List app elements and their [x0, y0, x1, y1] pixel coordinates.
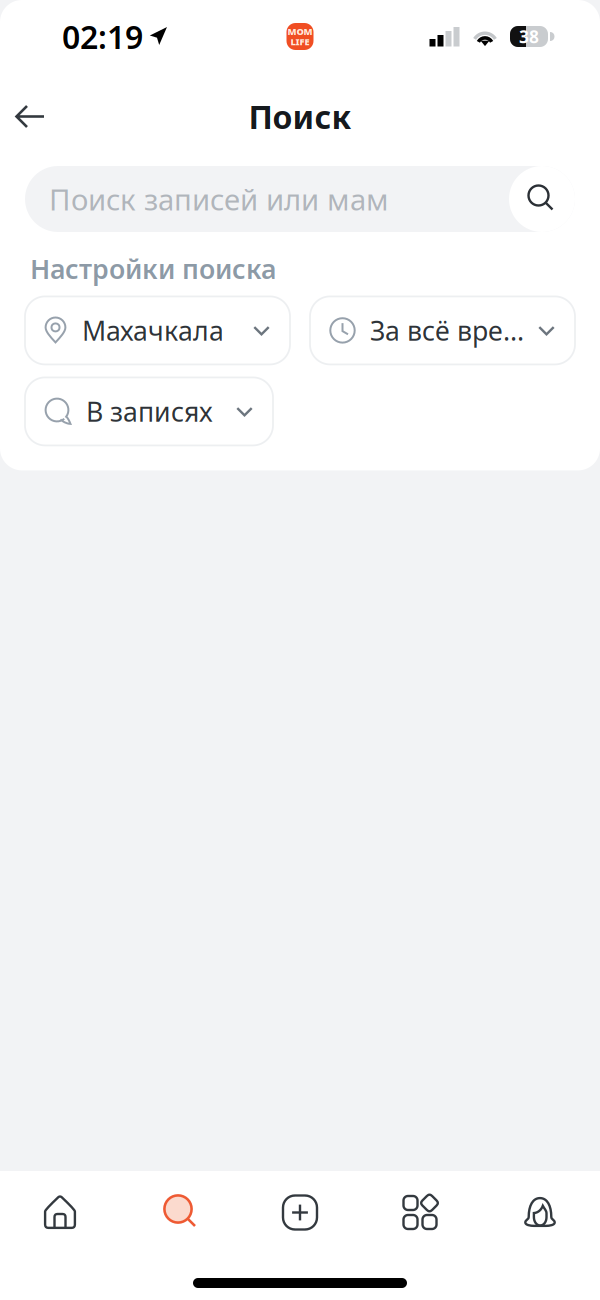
- button[interactable]: Search: [120, 1194, 240, 1230]
- staticText: За всё вре...: [370, 313, 524, 348]
- staticText: 38: [519, 25, 539, 48]
- staticText: 02:19: [62, 15, 143, 58]
- button[interactable]: Profile: [480, 1194, 600, 1230]
- button[interactable]: Махачкала: [25, 296, 290, 364]
- button[interactable]: Services: [360, 1194, 480, 1230]
- staticText: Поиск: [248, 95, 351, 138]
- button[interactable]: Create: [240, 1194, 360, 1230]
- button[interactable]: За всё вре...: [310, 296, 575, 364]
- button[interactable]: Search: [509, 166, 575, 232]
- staticText: Настройки поиска: [30, 251, 276, 286]
- button[interactable]: Home: [0, 1194, 120, 1230]
- staticText: Поиск записей или мам: [49, 179, 389, 218]
- staticText: В записях: [86, 394, 213, 429]
- button[interactable]: В записях: [25, 377, 273, 445]
- staticText: MOM: [287, 25, 312, 37]
- staticText: Махачкала: [82, 313, 224, 348]
- button[interactable]: Back: [0, 90, 60, 143]
- staticText: LIFE: [290, 35, 309, 48]
